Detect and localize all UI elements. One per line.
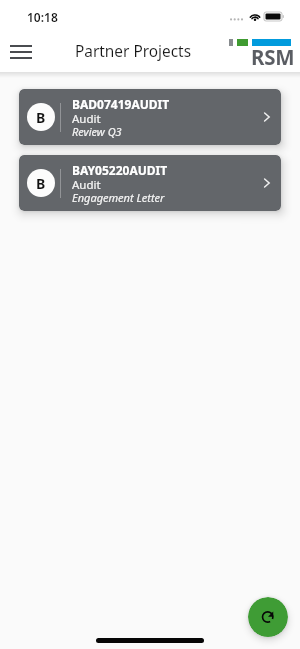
staticText: Audit: [72, 178, 101, 192]
staticText: B: [36, 108, 46, 127]
staticText: RSM: [251, 43, 295, 71]
staticText: BAY05220AUDIT: [72, 163, 168, 178]
button[interactable]: B: [19, 155, 281, 211]
staticText: Review Q3: [72, 126, 122, 139]
staticText: Audit: [72, 112, 101, 126]
staticText: BAD07419AUDIT: [72, 97, 170, 112]
staticText: Partner Projects: [75, 41, 192, 62]
button[interactable]: B: [19, 89, 281, 145]
staticText: B: [36, 174, 46, 193]
button[interactable]: Open navigation menu: [4, 35, 37, 68]
button[interactable]: Refresh: [248, 597, 288, 637]
staticText: 10:18: [27, 9, 58, 25]
staticText: Engagement Letter: [72, 192, 165, 205]
